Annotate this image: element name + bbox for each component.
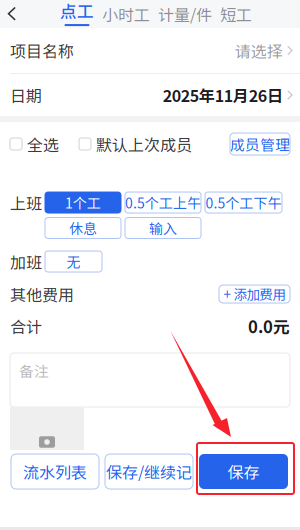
staticText: 保存/继续记: [106, 460, 192, 483]
staticText: 默认上次成员: [96, 132, 192, 156]
staticText: 流水列表: [23, 460, 87, 483]
button[interactable]: Add photo: [10, 407, 84, 450]
button[interactable]: 流水列表: [11, 454, 99, 489]
staticText: 备注: [19, 360, 49, 381]
button[interactable]: 短工: [220, 0, 252, 28]
staticText: 1个工: [65, 192, 101, 213]
staticText: 2025年11月26日: [163, 83, 283, 107]
button[interactable]: 休息: [45, 217, 121, 238]
staticText: 项目名称: [10, 39, 74, 62]
button[interactable]: 默认上次成员: [79, 132, 192, 156]
button[interactable]: 成员管理: [230, 133, 290, 155]
staticText: 计量/件: [158, 2, 212, 26]
button[interactable]: 小时工: [102, 0, 150, 28]
button[interactable]: 项目名称: [0, 28, 300, 73]
staticText: 加班: [10, 250, 42, 273]
button[interactable]: Back: [0, 0, 24, 28]
button[interactable]: 计量/件: [158, 0, 212, 28]
button[interactable]: 0.5个工上午: [125, 192, 201, 213]
button[interactable]: 无: [45, 251, 102, 272]
button[interactable]: 0.5个工下午: [205, 192, 282, 213]
staticText: 输入: [149, 218, 177, 238]
staticText: 合计: [10, 314, 42, 338]
staticText: 休息: [69, 218, 97, 238]
staticText: 成员管理: [230, 133, 290, 155]
staticText: 上班: [10, 191, 42, 214]
staticText: 无: [66, 251, 80, 272]
button[interactable]: 1个工: [45, 192, 121, 213]
staticText: 其他费用: [10, 282, 74, 306]
button[interactable]: 保存: [199, 454, 288, 489]
staticText: 0.5个工下午: [205, 192, 281, 213]
button[interactable]: 保存/继续记: [105, 454, 193, 489]
staticText: 请选择: [235, 39, 283, 62]
staticText: 0.0元: [248, 314, 290, 338]
button[interactable]: 全选: [10, 132, 59, 156]
staticText: 保存: [227, 460, 259, 483]
button[interactable]: 输入: [125, 217, 201, 238]
staticText: 0.5个工上午: [125, 192, 201, 213]
button[interactable]: 备注: [10, 353, 290, 407]
staticText: 全选: [27, 132, 59, 156]
button[interactable]: + 添加费用: [219, 285, 290, 303]
staticText: + 添加费用: [223, 284, 285, 304]
button[interactable]: 点工: [60, 0, 94, 28]
staticText: 点工: [60, 0, 94, 22]
staticText: 小时工: [102, 2, 150, 26]
staticText: 短工: [220, 2, 252, 26]
staticText: 日期: [10, 83, 42, 107]
button[interactable]: 日期: [0, 74, 300, 116]
